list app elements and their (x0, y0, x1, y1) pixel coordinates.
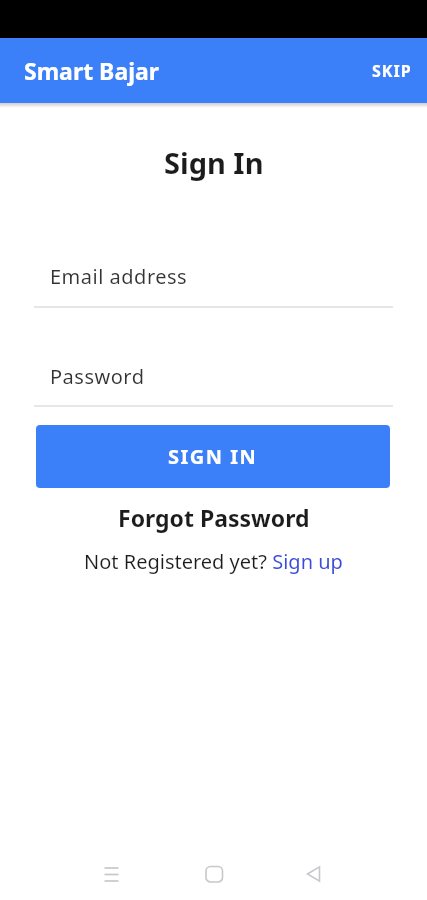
staticText: SIGN IN (168, 443, 258, 470)
staticText: SKIP (372, 60, 412, 82)
button[interactable]: SKIP (372, 60, 412, 82)
button[interactable]: Not Registered yet? Sign up (84, 548, 343, 575)
staticText: Smart Bajar (24, 55, 160, 86)
staticText: Password (50, 363, 145, 390)
button[interactable]: SIGN IN (36, 425, 390, 488)
button[interactable]: Forgot Password (118, 502, 310, 533)
button[interactable] (34, 352, 393, 407)
button[interactable] (34, 252, 393, 308)
staticText: Email address (50, 263, 188, 290)
staticText: Sign In (164, 143, 264, 182)
staticText: Not Registered yet? Sign up (84, 548, 343, 575)
staticText: Forgot Password (118, 502, 310, 533)
